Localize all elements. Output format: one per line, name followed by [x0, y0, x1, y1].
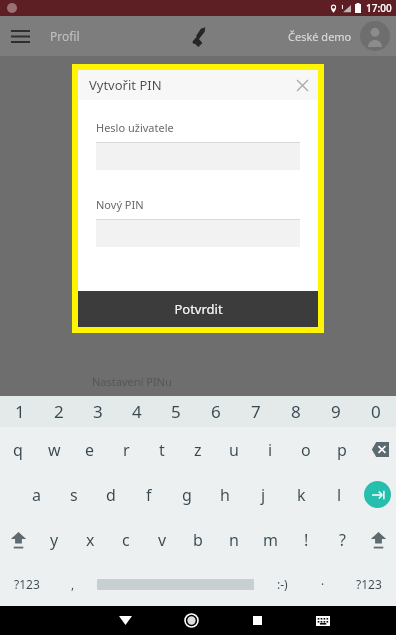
staticText: y	[50, 529, 59, 551]
staticText: j	[261, 484, 266, 506]
button[interactable]: z	[180, 427, 216, 472]
staticText: :-)	[277, 576, 288, 592]
button[interactable]: c	[108, 517, 144, 562]
staticText: ?123	[14, 576, 40, 592]
staticText: Vytvořit PIN	[89, 76, 162, 94]
button[interactable]: r	[108, 427, 144, 472]
staticText: h	[220, 484, 230, 506]
staticText: ,	[71, 576, 75, 592]
button[interactable]: 6	[196, 396, 236, 427]
staticText: b	[193, 529, 203, 551]
staticText: 0	[371, 400, 381, 423]
button[interactable]: ·	[304, 562, 341, 606]
button[interactable]: g	[168, 472, 206, 517]
staticText: t	[159, 439, 165, 461]
button[interactable]: i	[252, 427, 288, 472]
staticText: Heslo uživatele	[96, 120, 174, 135]
staticText: !	[304, 529, 309, 551]
button[interactable]: ?123	[341, 562, 396, 606]
button[interactable]: e	[72, 427, 108, 472]
staticText: i	[268, 439, 273, 461]
staticText: x	[86, 529, 95, 551]
button[interactable]: j	[244, 472, 282, 517]
staticText: k	[297, 484, 306, 506]
staticText: 17:00	[366, 1, 392, 15]
button[interactable]: l	[320, 472, 358, 517]
button[interactable]: u	[216, 427, 252, 472]
button[interactable]: x	[72, 517, 108, 562]
button[interactable]: 2	[39, 396, 78, 427]
button[interactable]: 4	[117, 396, 156, 427]
staticText: ·	[321, 576, 325, 592]
staticText: 3	[93, 400, 103, 423]
staticText: a	[32, 484, 41, 506]
staticText: 4	[132, 400, 142, 423]
button[interactable]: p	[324, 427, 360, 472]
button[interactable]: b	[180, 517, 216, 562]
button[interactable]: y	[36, 517, 72, 562]
button[interactable]: České demo	[288, 29, 352, 44]
staticText: ?	[339, 529, 346, 551]
button[interactable]: !	[288, 517, 324, 562]
button[interactable]: ,	[54, 562, 91, 606]
staticText: Nastavení PINu	[92, 374, 172, 389]
button[interactable]: Close	[290, 73, 314, 97]
button[interactable]: Home	[158, 606, 224, 635]
button[interactable]: Menu	[0, 16, 40, 56]
button[interactable]: 9	[316, 396, 356, 427]
staticText: 1	[15, 400, 25, 423]
staticText: w	[48, 439, 61, 461]
staticText: z	[194, 439, 202, 461]
staticText: 9	[331, 400, 341, 423]
button[interactable]: Switch keyboard	[290, 606, 356, 635]
button[interactable]: Enter	[358, 472, 396, 517]
button[interactable]: v	[144, 517, 180, 562]
staticText: Nový PIN	[96, 197, 144, 212]
button[interactable]: d	[92, 472, 130, 517]
staticText: 6	[211, 400, 221, 423]
button[interactable]: Recents	[224, 606, 290, 635]
button[interactable]: o	[288, 427, 324, 472]
button[interactable]: ?	[324, 517, 360, 562]
button[interactable]: 3	[78, 396, 117, 427]
button[interactable]: ?123	[0, 562, 54, 606]
staticText: g	[182, 484, 192, 506]
staticText: m	[263, 529, 278, 551]
button[interactable]: Backspace	[360, 427, 396, 472]
button[interactable]: a	[18, 472, 55, 517]
button[interactable]: Hide keyboard	[92, 606, 158, 635]
button[interactable]: Account	[360, 21, 390, 51]
button[interactable]: m	[252, 517, 288, 562]
staticText: 2	[54, 400, 64, 423]
staticText: 7	[251, 400, 261, 423]
button[interactable]: w	[36, 427, 72, 472]
button[interactable]: Edit	[179, 17, 217, 55]
staticText: Potvrdit	[174, 300, 223, 318]
button[interactable]: Shift	[0, 517, 36, 562]
button[interactable]: k	[282, 472, 320, 517]
staticText: v	[158, 529, 167, 551]
staticText: l	[337, 484, 342, 506]
button[interactable]: t	[144, 427, 180, 472]
staticText: c	[122, 529, 130, 551]
staticText: e	[85, 439, 95, 461]
button[interactable]: 5	[156, 396, 196, 427]
button[interactable]: n	[216, 517, 252, 562]
staticText: 5	[171, 400, 181, 423]
button[interactable]: h	[206, 472, 244, 517]
button[interactable]: s	[55, 472, 92, 517]
button[interactable]: Shift	[360, 517, 396, 562]
button[interactable]: 7	[236, 396, 276, 427]
button[interactable]: Space	[91, 562, 260, 606]
button[interactable]: 1	[0, 396, 39, 427]
button[interactable]: f	[130, 472, 168, 517]
staticText: d	[106, 484, 116, 506]
button[interactable]: 0	[356, 396, 396, 427]
staticText: r	[123, 439, 130, 461]
button[interactable]: :-)	[260, 562, 304, 606]
button[interactable]: 8	[276, 396, 316, 427]
button[interactable]: q	[0, 427, 36, 472]
button[interactable]: Potvrdit	[78, 291, 318, 327]
